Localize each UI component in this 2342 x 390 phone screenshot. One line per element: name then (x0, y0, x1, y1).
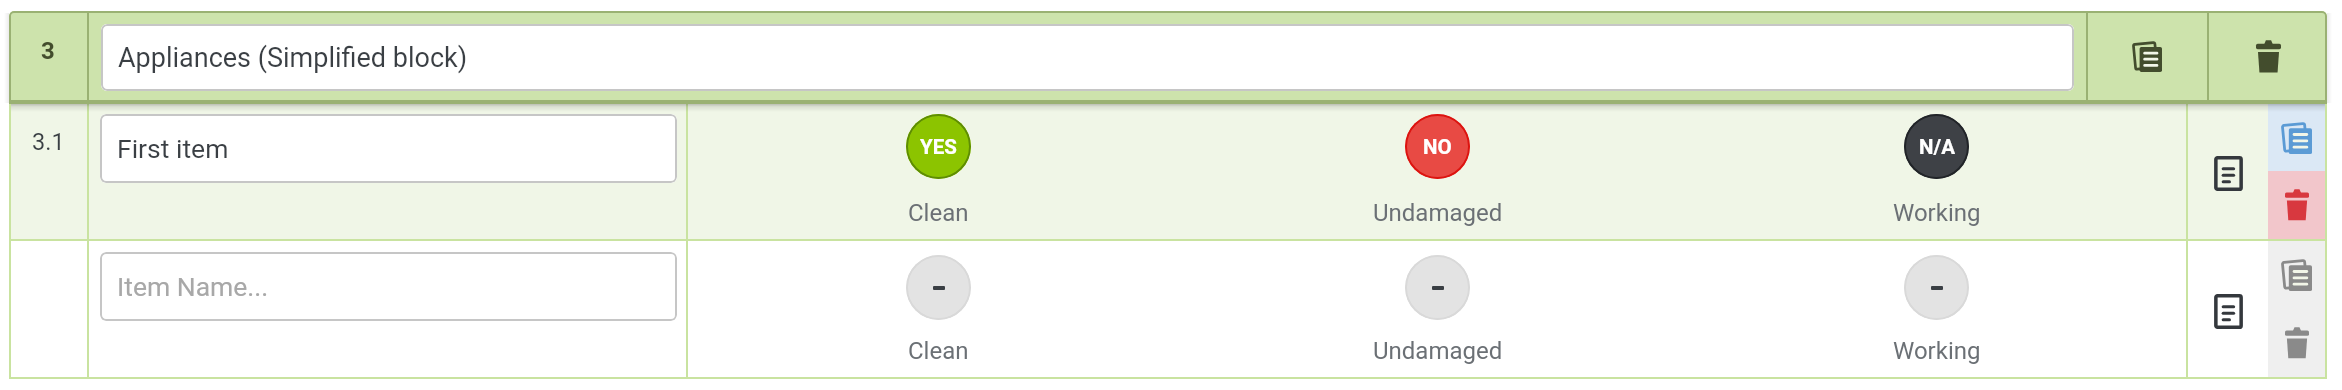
button[interactable]: YES (688, 114, 1188, 227)
staticText: Undamaged (1373, 199, 1503, 227)
staticText: Item Name... (117, 271, 269, 302)
button[interactable]: Delete block (2209, 11, 2327, 102)
staticText: 3 (41, 37, 55, 65)
button[interactable]: 3 (9, 11, 87, 102)
button[interactable]: Appliances (Simplified block) (101, 24, 2074, 91)
staticText: N/A (1919, 135, 1955, 159)
button[interactable]: First item (100, 114, 677, 183)
button[interactable]: Undamaged (1188, 255, 1687, 365)
staticText: Clean (908, 337, 969, 365)
staticText: Undamaged (1373, 337, 1503, 365)
button[interactable]: Working (1687, 255, 2186, 365)
button[interactable]: Notes (2188, 241, 2268, 377)
button[interactable]: Notes (2188, 104, 2268, 239)
staticText: Working (1893, 337, 1981, 365)
staticText: Clean (908, 199, 969, 227)
button[interactable]: Delete row (2268, 171, 2325, 239)
button[interactable]: Delete row (2268, 309, 2325, 377)
button[interactable]: Clean (688, 255, 1188, 365)
staticText: NO (1423, 135, 1452, 159)
button[interactable]: Duplicate row (2268, 241, 2325, 309)
button[interactable]: N/A (1687, 114, 2186, 227)
button[interactable]: NO (1188, 114, 1687, 227)
staticText: YES (920, 135, 957, 159)
button[interactable]: Duplicate row (2268, 104, 2325, 171)
staticText: First item (117, 133, 229, 164)
staticText: 3.1 (32, 128, 65, 156)
button[interactable]: Item Name... (100, 252, 677, 321)
staticText: Working (1893, 199, 1981, 227)
staticText: Appliances (Simplified block) (118, 42, 468, 74)
button[interactable]: Duplicate block (2088, 11, 2207, 102)
